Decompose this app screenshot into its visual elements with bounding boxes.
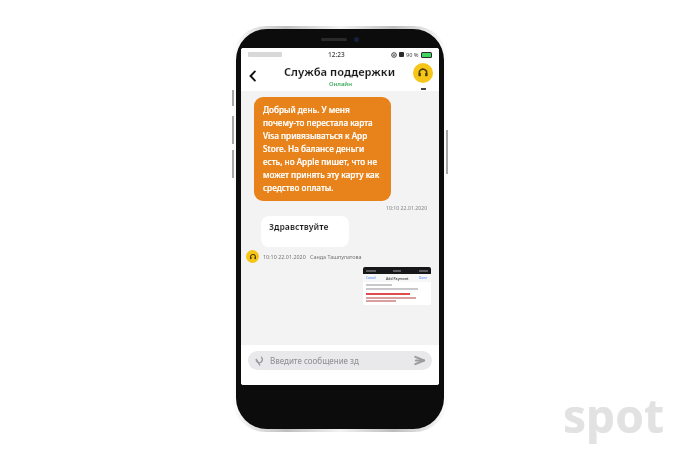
- staticText: Здравствуйте: [269, 221, 329, 233]
- other: Send: [413, 354, 426, 367]
- staticText: 10:10 22.01.2020: [263, 253, 306, 260]
- button[interactable]: Здравствуйте: [261, 216, 349, 247]
- button[interactable]: Support agent: [413, 63, 433, 83]
- staticText: Add Payment: [386, 276, 409, 281]
- button[interactable]: Attached screenshot: [363, 267, 431, 305]
- staticText: Добрый день. У меня почему-то перестала …: [263, 104, 382, 194]
- other: Attach file: [254, 355, 265, 366]
- button[interactable]: Back: [244, 67, 262, 85]
- staticText: Cancel: [366, 276, 376, 280]
- staticText: 90 %: [406, 51, 419, 59]
- staticText: Служба поддержки: [284, 64, 396, 79]
- staticText: 12:23: [328, 50, 345, 59]
- staticText: Введите сообщение зд: [270, 355, 410, 366]
- staticText: Санда Ташпулатова: [310, 253, 362, 260]
- button[interactable]: Attach file: [248, 351, 432, 370]
- button[interactable]: Добрый день. У меня почему-то перестала …: [254, 97, 391, 201]
- staticText: 10:10 22.01.2020: [386, 204, 428, 211]
- staticText: Онлайн: [329, 80, 352, 88]
- staticText: Done: [419, 276, 428, 280]
- staticText: spot: [563, 384, 664, 447]
